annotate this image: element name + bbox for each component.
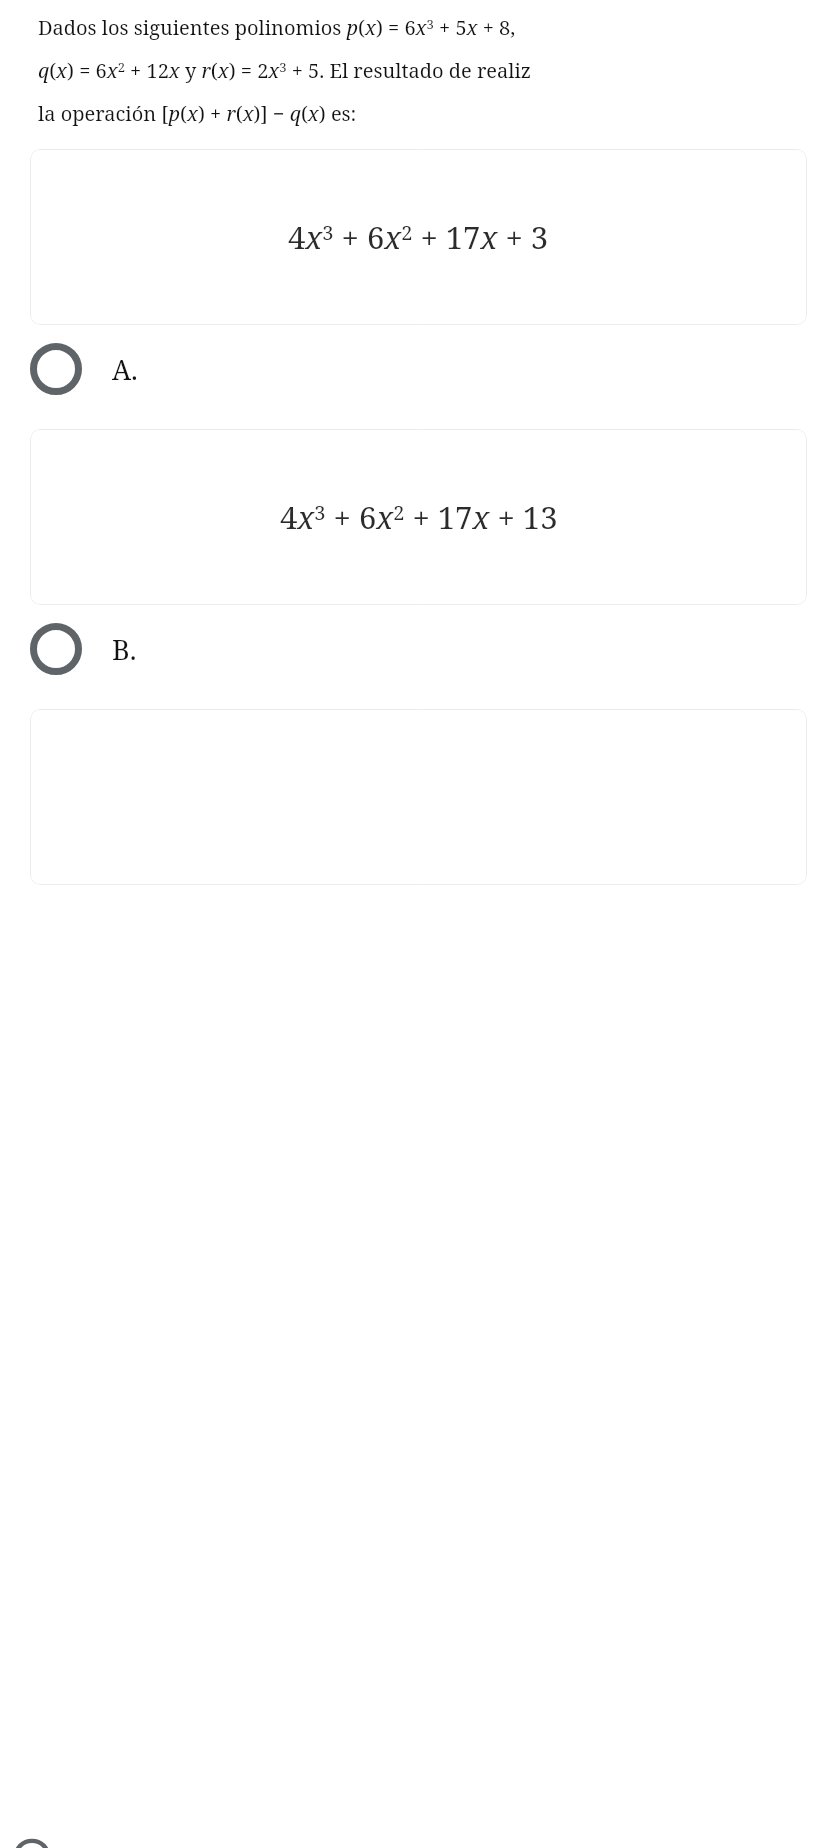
- other: Seleccionar opción C: [14, 1834, 50, 1848]
- button[interactable]: 4x3 + 6x2 + 17x + 13: [30, 429, 807, 605]
- other: Seleccionar opción B.: [30, 623, 82, 675]
- staticText: B.: [112, 631, 137, 668]
- staticText: Dados los siguientes polinomios p(x) = 6…: [38, 14, 516, 41]
- staticText: 4x3 + 6x2 + 17x + 3: [288, 216, 549, 258]
- other: Seleccionar opción A.: [30, 343, 82, 395]
- staticText: A.: [112, 351, 138, 388]
- staticText: 4x3 + 6x2 + 17x + 13: [280, 496, 558, 538]
- button[interactable]: Seleccionar opción B.: [0, 605, 837, 693]
- staticText: la operación [p(x) + r(x)] − q(x) es:: [38, 100, 357, 127]
- button[interactable]: 4x3 + 6x2 + 17x + 3: [30, 149, 807, 325]
- button[interactable]: Seleccionar opción A.: [0, 325, 837, 413]
- staticText: q(x) = 6x2 + 12x y r(x) = 2x3 + 5. El re…: [38, 57, 532, 84]
